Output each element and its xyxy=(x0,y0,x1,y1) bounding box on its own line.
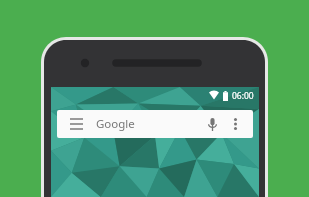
staticText: 06:00 xyxy=(232,90,254,102)
button[interactable]: Voice search xyxy=(202,114,222,134)
button[interactable]: Menu xyxy=(57,110,253,138)
button[interactable]: More options xyxy=(226,115,244,133)
staticText: Google xyxy=(96,116,135,132)
button[interactable]: Menu xyxy=(66,114,86,134)
